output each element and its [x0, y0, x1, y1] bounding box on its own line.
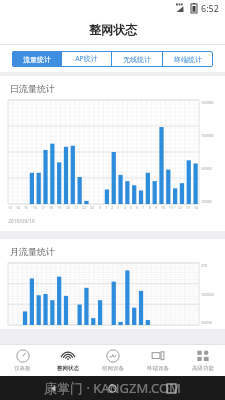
staticText: 7	[142, 205, 145, 210]
button[interactable]: 仪表板	[0, 345, 45, 376]
staticText: 200KB	[201, 199, 212, 204]
button[interactable]: 高级功能	[180, 345, 225, 376]
staticText: 1000KB	[201, 133, 214, 138]
staticText: 终端统计	[174, 55, 202, 64]
staticText: 无线统计	[123, 55, 151, 64]
staticText: 12	[178, 205, 183, 210]
button[interactable]: Back	[50, 384, 59, 393]
staticText: 10	[161, 205, 166, 210]
staticText: 11	[169, 205, 174, 210]
staticText: 整网状态	[57, 365, 79, 372]
staticText: 5	[130, 205, 133, 210]
staticText: 22	[82, 205, 87, 210]
staticText: 日流量统计	[10, 83, 55, 94]
staticText: 13	[8, 205, 13, 210]
staticText: 21	[74, 205, 79, 210]
staticText: 500GB	[201, 320, 212, 325]
staticText: 0	[99, 205, 102, 210]
staticText: 6:52	[201, 2, 219, 14]
staticText: 整网状态	[89, 22, 137, 37]
staticText: 1	[105, 205, 108, 210]
staticText: 组网设备	[102, 365, 124, 372]
staticText: AP统计	[75, 54, 98, 64]
staticText: 2	[111, 205, 114, 210]
staticText: 4	[124, 205, 127, 210]
staticText: 月流量统计	[10, 246, 55, 257]
staticText: 19	[57, 205, 62, 210]
button[interactable]: 整网状态	[45, 345, 90, 376]
staticText: 17	[41, 205, 46, 210]
staticText: 14	[194, 205, 199, 210]
staticText: 仪表板	[14, 365, 31, 372]
button[interactable]: AP统计	[62, 51, 111, 67]
staticText: 康掌门 · KANGZM.COM	[44, 379, 181, 397]
staticText: 14	[16, 205, 21, 210]
staticText: 15	[24, 205, 29, 210]
staticText: 2TB	[201, 263, 208, 268]
staticText: 1500KB	[201, 100, 214, 105]
staticText: 8	[149, 205, 152, 210]
button[interactable]: Home	[108, 384, 117, 393]
button[interactable]: 组网设备	[90, 345, 135, 376]
staticText: 终端设备	[147, 365, 169, 372]
staticText: 9	[155, 205, 158, 210]
staticText: 流量统计	[23, 55, 51, 64]
staticText: 2019/09/19	[8, 218, 35, 225]
staticText: 6	[136, 205, 139, 210]
staticText: 高级功能	[192, 365, 214, 372]
staticText: 3	[117, 205, 120, 210]
staticText: 16	[33, 205, 38, 210]
button[interactable]: 终端设备	[135, 345, 180, 376]
button[interactable]: 无线统计	[112, 51, 162, 67]
button[interactable]: Recents	[167, 384, 176, 393]
staticText: 23	[90, 205, 95, 210]
staticText: 13	[186, 205, 191, 210]
staticText: 20	[66, 205, 71, 210]
staticText: 18	[49, 205, 54, 210]
button[interactable]: 流量统计	[12, 51, 61, 67]
staticText: 1000GB	[201, 292, 214, 297]
button[interactable]: 终端统计	[163, 51, 213, 67]
staticText: 500KB	[201, 166, 212, 171]
